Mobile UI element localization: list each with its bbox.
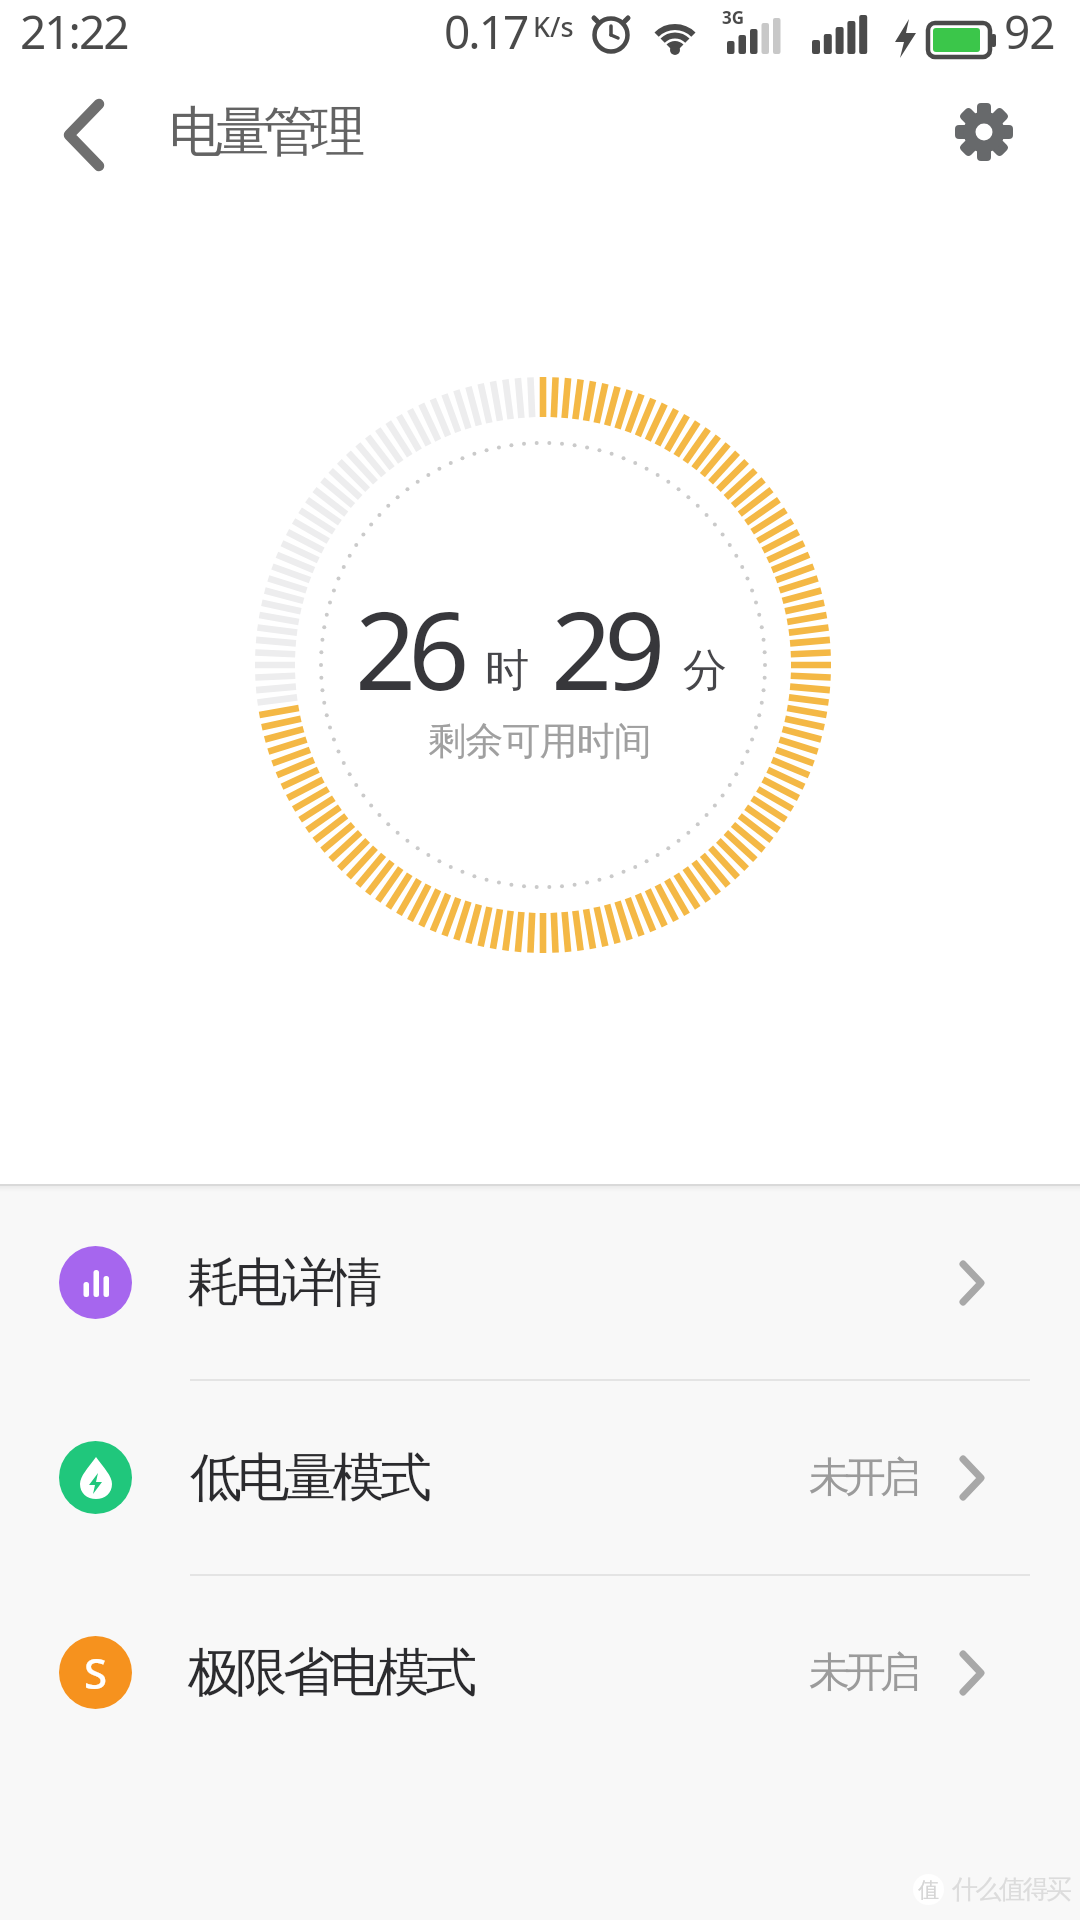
- staticText: S: [84, 1644, 108, 1701]
- staticText: 未开启: [809, 1452, 916, 1504]
- staticText: 分: [683, 643, 727, 698]
- staticText: 26: [355, 576, 462, 722]
- staticText: 值: [918, 1877, 939, 1903]
- staticText: 电量管理: [169, 98, 359, 166]
- staticText: 低电量模式: [190, 1445, 428, 1511]
- staticText: 耗电详情: [190, 1250, 380, 1316]
- staticText: 剩余可用时间: [429, 717, 651, 765]
- button[interactable]: [940, 88, 1028, 176]
- button[interactable]: 耗电详情: [0, 1186, 1080, 1379]
- staticText: 时: [485, 643, 529, 698]
- staticText: K/s: [533, 8, 574, 45]
- staticText: 3G: [722, 6, 745, 29]
- staticText: 什么值得买: [952, 1873, 1070, 1906]
- button[interactable]: S: [0, 1576, 1080, 1769]
- staticText: 0.17: [444, 0, 528, 63]
- button[interactable]: 低电量模式: [0, 1381, 1080, 1574]
- staticText: 极限省电模式: [190, 1640, 475, 1706]
- staticText: 29: [551, 576, 658, 722]
- button[interactable]: [40, 90, 130, 180]
- staticText: 21:22: [20, 0, 128, 63]
- staticText: 92: [1004, 0, 1055, 63]
- staticText: 未开启: [809, 1647, 916, 1699]
